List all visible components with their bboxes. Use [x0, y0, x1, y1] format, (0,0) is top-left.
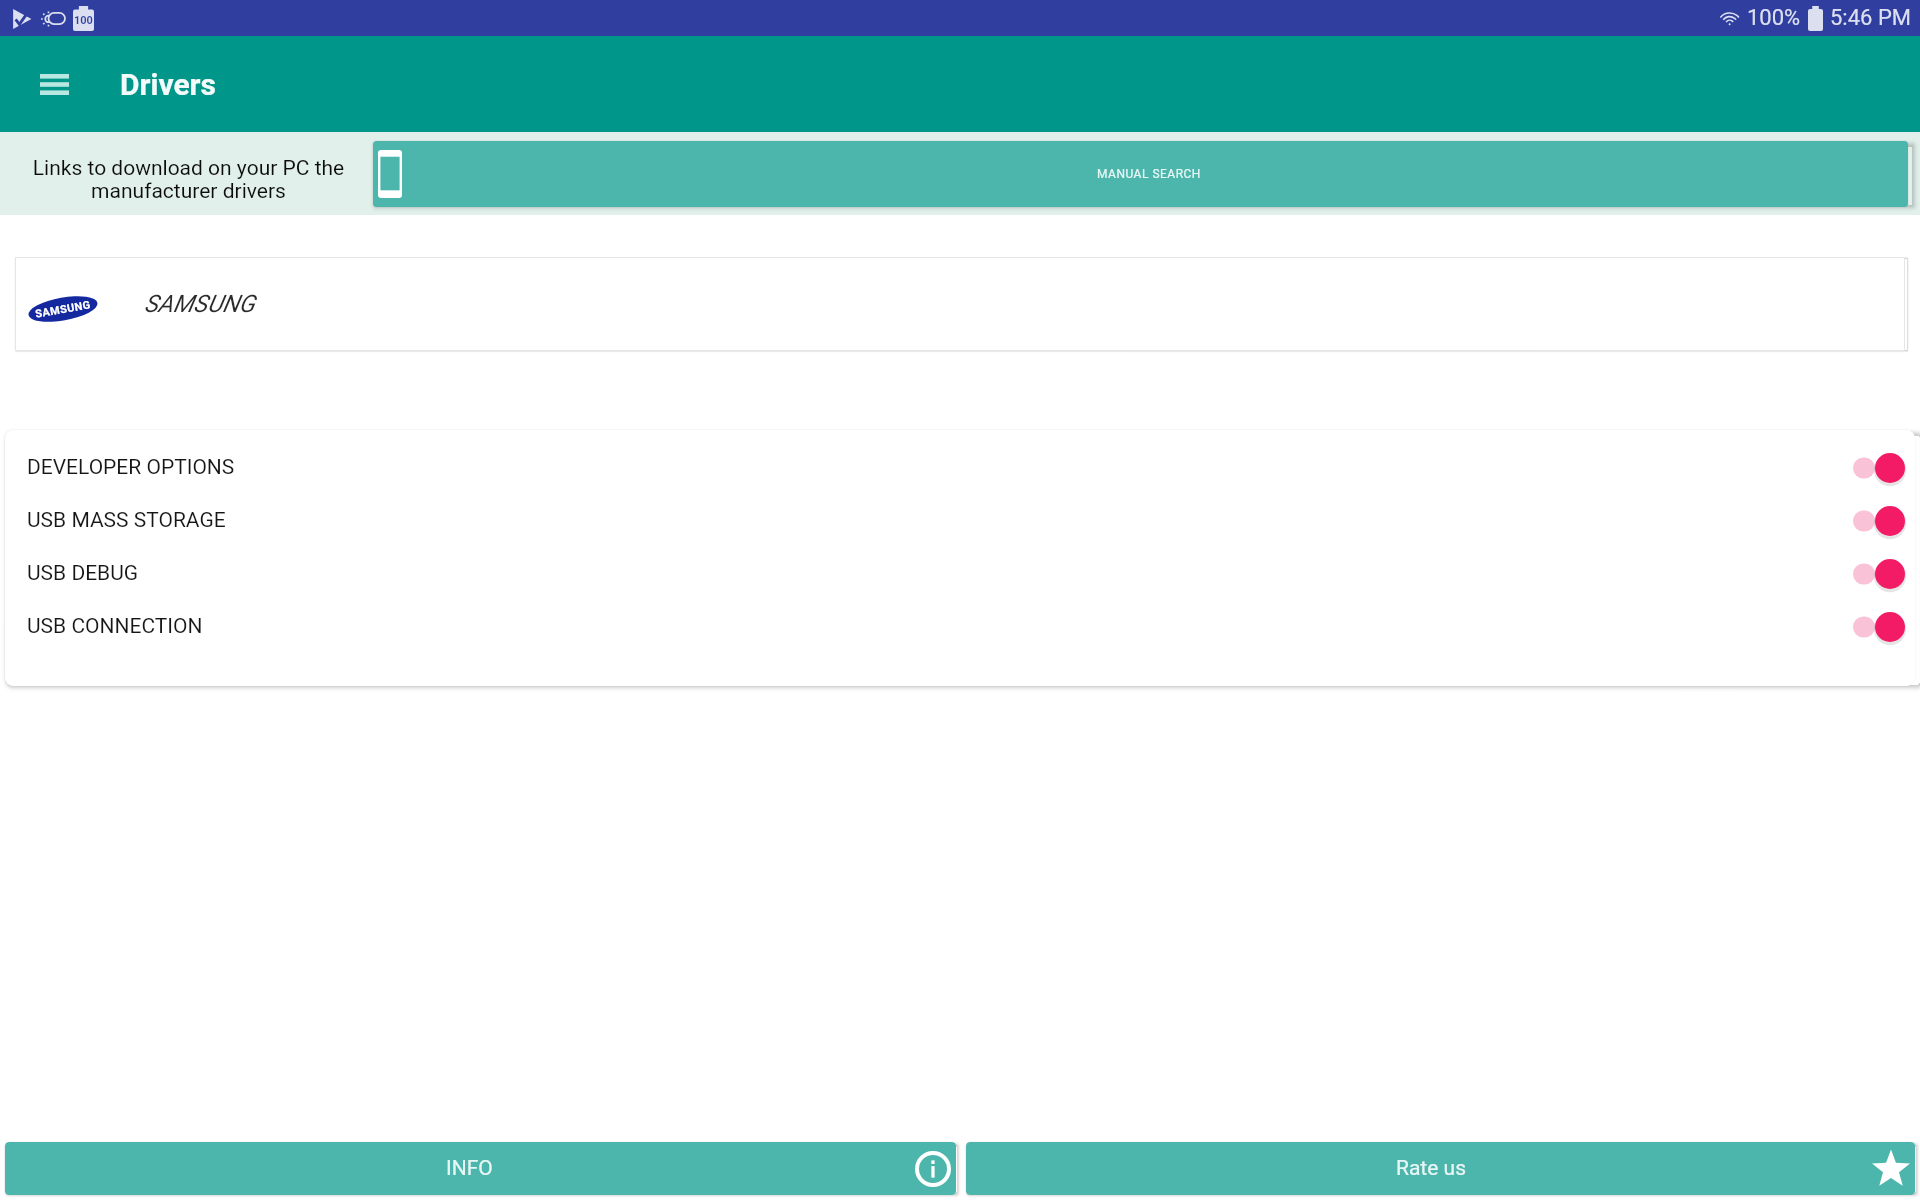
button[interactable]: Toggle DEVELOPER OPTIONS, on	[1853, 451, 1905, 485]
button[interactable]: Rate us	[966, 1142, 1915, 1195]
button[interactable]: SAMSUNG	[15, 257, 1905, 351]
staticText: INFO	[446, 1156, 493, 1181]
staticText: SAMSUNG	[34, 298, 92, 321]
button[interactable]: USB CONNECTION	[5, 600, 1915, 653]
staticText: 100	[74, 14, 93, 27]
staticText: USB CONNECTION	[27, 614, 203, 639]
button[interactable]: USB DEBUG	[5, 547, 1915, 600]
button[interactable]: Toggle USB DEBUG, on	[1853, 557, 1905, 591]
button[interactable]: DEVELOPER OPTIONS	[5, 441, 1915, 494]
staticText: Links to download on your PC the manufac…	[16, 156, 361, 203]
button[interactable]: USB MASS STORAGE	[5, 494, 1915, 547]
button[interactable]: Toggle USB CONNECTION, on	[1853, 610, 1905, 644]
staticText: SAMSUNG	[144, 290, 255, 318]
staticText: 5:46 PM	[1830, 5, 1911, 31]
staticText: 100%	[1747, 5, 1801, 31]
button[interactable]: MANUAL SEARCH	[373, 141, 1908, 207]
staticText: Drivers	[120, 67, 217, 102]
button[interactable]: Toggle USB MASS STORAGE, on	[1853, 504, 1905, 538]
staticText: MANUAL SEARCH	[1097, 167, 1201, 181]
button[interactable]: Open navigation menu	[26, 56, 82, 112]
staticText: USB DEBUG	[27, 561, 139, 586]
button[interactable]: INFO	[5, 1142, 956, 1195]
staticText: USB MASS STORAGE	[27, 508, 226, 533]
staticText: DEVELOPER OPTIONS	[27, 455, 235, 480]
staticText: Rate us	[1396, 1156, 1466, 1181]
